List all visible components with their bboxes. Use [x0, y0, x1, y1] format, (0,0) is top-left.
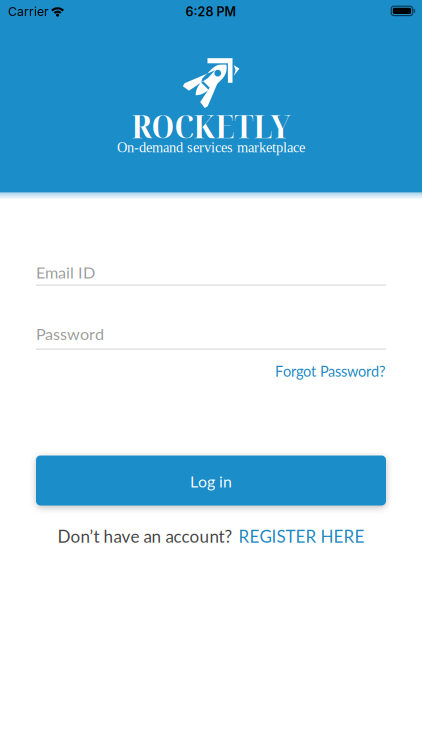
staticText: On-demand services marketplace — [117, 139, 305, 155]
button[interactable]: Forgot Password? — [275, 362, 386, 380]
staticText: REGISTER HERE — [238, 526, 364, 546]
button[interactable]: Log in — [36, 455, 386, 505]
staticText: 6:28 PM — [185, 4, 236, 19]
staticText: ROCKETLY — [131, 103, 290, 148]
staticText: Carrier — [8, 4, 49, 19]
button[interactable]: Email ID — [36, 262, 386, 285]
button[interactable]: REGISTER HERE — [238, 526, 364, 546]
staticText: Password — [36, 324, 104, 343]
staticText: Log in — [190, 472, 232, 491]
button[interactable]: Password — [36, 324, 386, 350]
staticText: Forgot Password? — [275, 362, 386, 380]
staticText: Don’t have an account? — [57, 526, 232, 546]
staticText: Email ID — [36, 262, 95, 282]
